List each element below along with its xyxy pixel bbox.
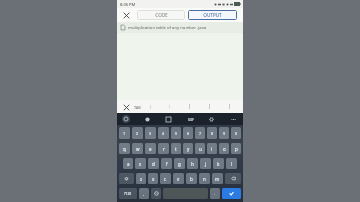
button[interactable]: 0 [231, 127, 241, 139]
button[interactable]: o [219, 143, 229, 154]
button[interactable]: : [160, 101, 179, 112]
staticText: h [191, 161, 194, 167]
button[interactable]: j [200, 158, 211, 169]
staticText: d [152, 161, 155, 167]
staticText: OUTPUT [203, 12, 222, 18]
button[interactable]: u [195, 143, 205, 154]
button[interactable]: Google [122, 115, 130, 123]
button[interactable]: a [123, 158, 133, 169]
button[interactable]: 8 [207, 127, 217, 139]
button[interactable]: b [186, 173, 197, 184]
button[interactable]: f [161, 158, 172, 169]
staticText: t [175, 146, 177, 152]
button[interactable]: Sticker [164, 115, 173, 124]
staticText: g [178, 161, 181, 167]
button[interactable]: t [171, 143, 181, 154]
button[interactable]: Enter [222, 188, 241, 199]
button[interactable]: OUTPUT [188, 10, 237, 20]
staticText: q [123, 146, 126, 152]
staticText: TAB [134, 105, 141, 110]
button[interactable]: Backspace [225, 173, 241, 184]
button[interactable]: n [199, 173, 210, 184]
button[interactable]: q [119, 143, 130, 154]
button[interactable]: l [226, 158, 237, 169]
staticText: y [187, 146, 190, 152]
button[interactable]: ; [141, 101, 160, 112]
staticText: v [177, 176, 180, 182]
staticText: , [143, 191, 145, 197]
staticText: e [149, 146, 152, 152]
button[interactable]: 7 [195, 127, 205, 139]
staticText: p [235, 146, 238, 152]
button[interactable]: 3 [145, 127, 156, 139]
staticText: w [136, 146, 140, 152]
button[interactable]: w [132, 143, 143, 154]
button[interactable]: | [219, 101, 239, 112]
staticText: 1 [123, 131, 126, 136]
staticText: x [152, 176, 155, 182]
button[interactable]: Themes [143, 115, 152, 124]
staticText: r [163, 146, 165, 152]
button[interactable]: k [213, 158, 224, 169]
button[interactable]: x [148, 173, 158, 184]
staticText: 8 [211, 131, 214, 136]
staticText: m [215, 176, 220, 182]
button[interactable]: 6 [183, 127, 193, 139]
button[interactable]: Close [121, 10, 132, 21]
button[interactable]: i [207, 143, 217, 154]
button[interactable]: More options [229, 115, 238, 124]
button[interactable]: multiplication table of any number .java [121, 22, 239, 33]
staticText: 3 [149, 131, 152, 136]
staticText: 8:06 PM [120, 2, 136, 7]
staticText: 6 [187, 131, 190, 136]
staticText: a [127, 161, 130, 167]
button[interactable]: m [212, 173, 223, 184]
button[interactable]: y [183, 143, 193, 154]
button[interactable]: z [136, 173, 146, 184]
button[interactable]: Settings [207, 115, 216, 124]
staticText: 5 [175, 131, 178, 136]
staticText: k [217, 161, 220, 167]
button[interactable]: | [199, 101, 219, 112]
button[interactable]: GIF [186, 115, 195, 124]
button[interactable]: , [139, 188, 149, 199]
staticText: s [139, 161, 142, 167]
staticText: CODE [155, 12, 168, 18]
button[interactable]: CODE [137, 10, 185, 20]
button[interactable]: s [135, 158, 146, 169]
button[interactable]: g [174, 158, 185, 169]
staticText: 9 [223, 131, 226, 136]
button[interactable]: c [160, 173, 171, 184]
button[interactable]: 1 [119, 127, 130, 139]
staticText: c [164, 176, 167, 182]
button[interactable]: d [148, 158, 159, 169]
staticText: o [223, 146, 226, 152]
staticText: ; [150, 103, 152, 110]
button[interactable]: Shift [119, 173, 134, 184]
button[interactable]: | [179, 101, 199, 112]
staticText: i [211, 146, 213, 152]
button[interactable]: v [173, 173, 184, 184]
staticText: | [228, 103, 231, 110]
button[interactable]: TAB [134, 102, 141, 112]
staticText: multiplication table of any number .java [128, 25, 207, 31]
button[interactable]: Emoji [151, 188, 161, 199]
button[interactable]: Close keyboard bar [121, 102, 131, 112]
staticText: l [231, 161, 233, 167]
button[interactable]: 2 [132, 127, 143, 139]
button[interactable]: 5 [171, 127, 181, 139]
button[interactable]: ?123 [119, 188, 137, 199]
button[interactable]: h [187, 158, 198, 169]
staticText: z [140, 176, 143, 182]
staticText: ?123 [124, 191, 132, 196]
button[interactable]: 9 [219, 127, 229, 139]
button[interactable]: p [231, 143, 241, 154]
button[interactable]: e [145, 143, 156, 154]
staticText: f [166, 161, 168, 167]
staticText: 2 [136, 131, 139, 136]
button[interactable]: . [210, 188, 220, 199]
staticText: | [208, 103, 211, 110]
button[interactable]: r [158, 143, 169, 154]
button[interactable]: 4 [158, 127, 169, 139]
